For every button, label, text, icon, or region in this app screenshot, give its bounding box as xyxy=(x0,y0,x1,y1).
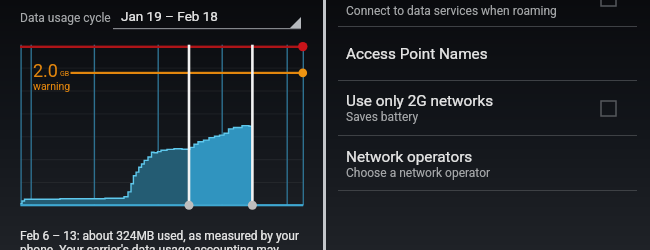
button[interactable]: Use only 2G networks xyxy=(326,81,650,136)
button[interactable]: Toggle checkbox xyxy=(601,0,616,6)
staticText: Connect to data services when roaming xyxy=(346,4,557,18)
staticText: Feb 6 – 13: about 324MB used, as measure… xyxy=(20,229,300,243)
button[interactable]: Access Point Names xyxy=(326,26,650,81)
staticText: warning xyxy=(33,80,71,92)
staticText: Jan 19 – Feb 18 xyxy=(121,8,218,24)
button[interactable]: Toggle checkbox xyxy=(601,101,616,116)
staticText: Data usage cycle xyxy=(20,11,111,25)
button[interactable]: Network operators xyxy=(326,136,650,191)
staticText: Access Point Names xyxy=(346,45,488,63)
staticText: Use only 2G networks xyxy=(346,92,494,110)
staticText: Choose a network operator xyxy=(346,166,491,180)
staticText: GB xyxy=(60,70,70,78)
button[interactable]: Jan 19 – Feb 18 xyxy=(113,3,301,29)
staticText: Saves battery xyxy=(346,110,419,124)
button[interactable]: Connect to data services when roaming xyxy=(326,0,650,26)
staticText: phone. Your carrier's data usage account… xyxy=(20,243,279,250)
staticText: Network operators xyxy=(346,148,473,166)
staticText: 2.0 xyxy=(33,60,58,81)
